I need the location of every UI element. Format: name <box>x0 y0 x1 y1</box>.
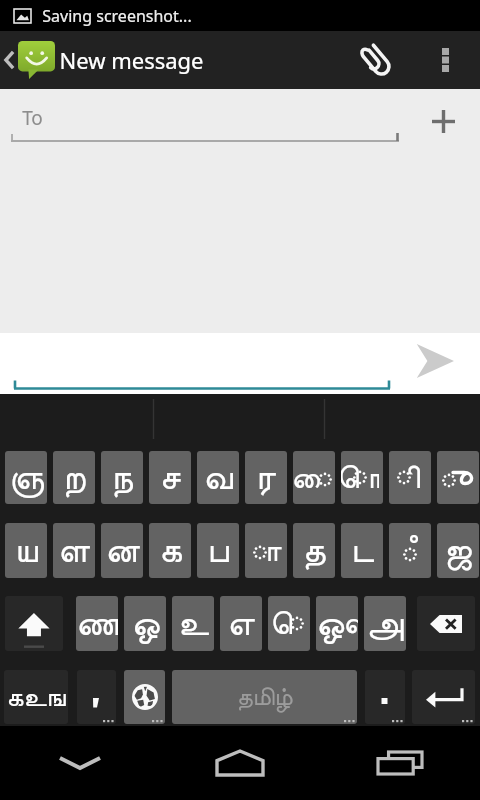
button[interactable]: உ <box>172 596 214 651</box>
staticText: தமிழ் <box>236 685 293 710</box>
staticText: ா <box>256 535 282 567</box>
button[interactable]: தமிழ் <box>172 670 357 724</box>
staticText: க <box>159 533 182 569</box>
button[interactable]: ற <box>53 451 95 504</box>
staticText: ச <box>159 460 181 496</box>
button[interactable]: ப <box>197 523 239 578</box>
staticText: ன <box>105 533 140 569</box>
button[interactable]: ை <box>293 451 335 504</box>
button[interactable]: Period <box>365 670 405 724</box>
button[interactable] <box>437 451 479 504</box>
button[interactable]: ஔ <box>316 596 358 651</box>
button[interactable]: Enter <box>412 670 475 724</box>
button[interactable]: ஒ <box>124 596 166 651</box>
staticText: ப <box>207 533 229 569</box>
staticText: ட <box>351 533 374 569</box>
button[interactable]: க <box>149 523 191 578</box>
button[interactable]: Home <box>160 726 320 800</box>
button[interactable]: ஜ <box>437 523 479 578</box>
button[interactable]: ண <box>76 596 118 651</box>
staticText: ர <box>256 460 276 496</box>
staticText: உ <box>178 606 209 642</box>
button[interactable]: Comma <box>77 670 116 724</box>
button[interactable]: ெ <box>268 596 310 651</box>
button[interactable]: ா <box>245 523 287 578</box>
button[interactable]: Delete <box>417 596 475 651</box>
button[interactable]: ட <box>341 523 383 578</box>
button[interactable]: ி <box>389 451 431 504</box>
button[interactable]: ய <box>5 523 47 578</box>
button[interactable]: அ <box>364 596 406 651</box>
button[interactable]: ள <box>53 523 95 578</box>
button[interactable]: Attach <box>348 31 404 89</box>
staticText: Saving screenshot... <box>42 5 192 27</box>
button[interactable]: ச <box>149 451 191 504</box>
staticText: ஔ <box>316 606 358 642</box>
button[interactable]: Recent apps <box>320 726 480 800</box>
button[interactable]: வ <box>197 451 239 504</box>
staticText: த <box>302 533 326 569</box>
button[interactable]: ந <box>101 451 143 504</box>
button[interactable]: Navigate up <box>3 31 55 89</box>
staticText: ை <box>293 462 329 494</box>
button[interactable]: Add recipient <box>417 95 469 147</box>
button[interactable]: ர <box>245 451 287 504</box>
button[interactable]: Send <box>400 335 470 387</box>
staticText: ற <box>62 460 86 496</box>
staticText: ய <box>15 533 38 569</box>
staticText: New message <box>59 45 204 75</box>
staticText: அ <box>366 606 404 642</box>
button[interactable]: ன <box>101 523 143 578</box>
staticText: ஂ <box>409 535 418 567</box>
staticText: ண <box>76 606 118 642</box>
staticText: வ <box>203 460 233 496</box>
staticText: To <box>22 105 43 131</box>
button[interactable]: எ <box>220 596 262 651</box>
button[interactable]: ஂ <box>389 523 431 578</box>
button[interactable]: த <box>293 523 335 578</box>
staticText: ஞ <box>9 460 44 496</box>
button[interactable]: Change keyboard <box>124 670 165 724</box>
button[interactable]: More options <box>418 31 472 89</box>
staticText: ள <box>58 533 90 569</box>
staticText: ொ <box>341 462 379 494</box>
staticText: ி <box>406 462 420 494</box>
button[interactable]: கஉங <box>4 670 68 724</box>
button[interactable]: ஞ <box>5 451 47 504</box>
staticText: ெ <box>270 608 301 640</box>
staticText: ஒ <box>131 606 160 642</box>
staticText: எ <box>227 606 255 642</box>
staticText: கஉங <box>6 684 66 711</box>
button[interactable]: Hide keyboard <box>0 726 160 800</box>
staticText: ந <box>111 460 133 496</box>
staticText: ஜ <box>444 533 472 569</box>
button[interactable]: Shift <box>5 596 63 651</box>
button[interactable]: ொ <box>341 451 383 504</box>
